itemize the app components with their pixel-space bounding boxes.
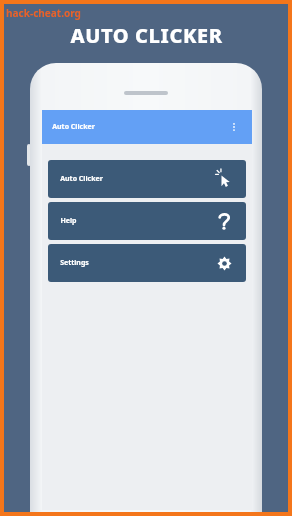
button[interactable]: Settings [48,244,246,282]
button[interactable]: Auto Clicker [42,110,252,144]
staticText: Settings [60,258,89,268]
staticText: Help [60,216,77,226]
staticText: Auto Clicker [52,122,95,132]
button[interactable]: More options [226,119,242,135]
staticText: AUTO CLICKER [70,22,223,49]
button[interactable]: Help [48,202,246,240]
staticText: hack-cheat.org [6,6,81,20]
staticText: Auto Clicker [60,174,103,184]
button[interactable]: Auto Clicker [48,160,246,198]
